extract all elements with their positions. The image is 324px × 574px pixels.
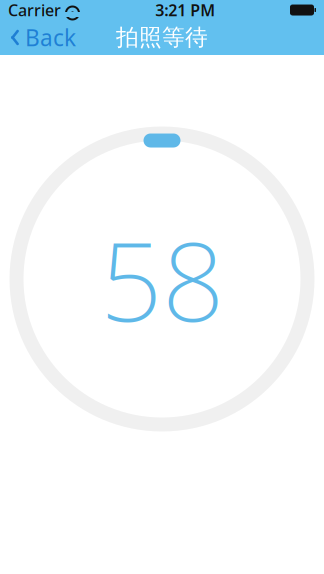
- staticText: Back: [25, 22, 76, 52]
- staticText: 3:21 PM: [155, 0, 215, 21]
- staticText: 58: [100, 206, 224, 352]
- button[interactable]: Back: [2, 20, 84, 54]
- staticText: Carrier: [8, 0, 61, 21]
- staticText: 拍照等待: [116, 24, 208, 51]
